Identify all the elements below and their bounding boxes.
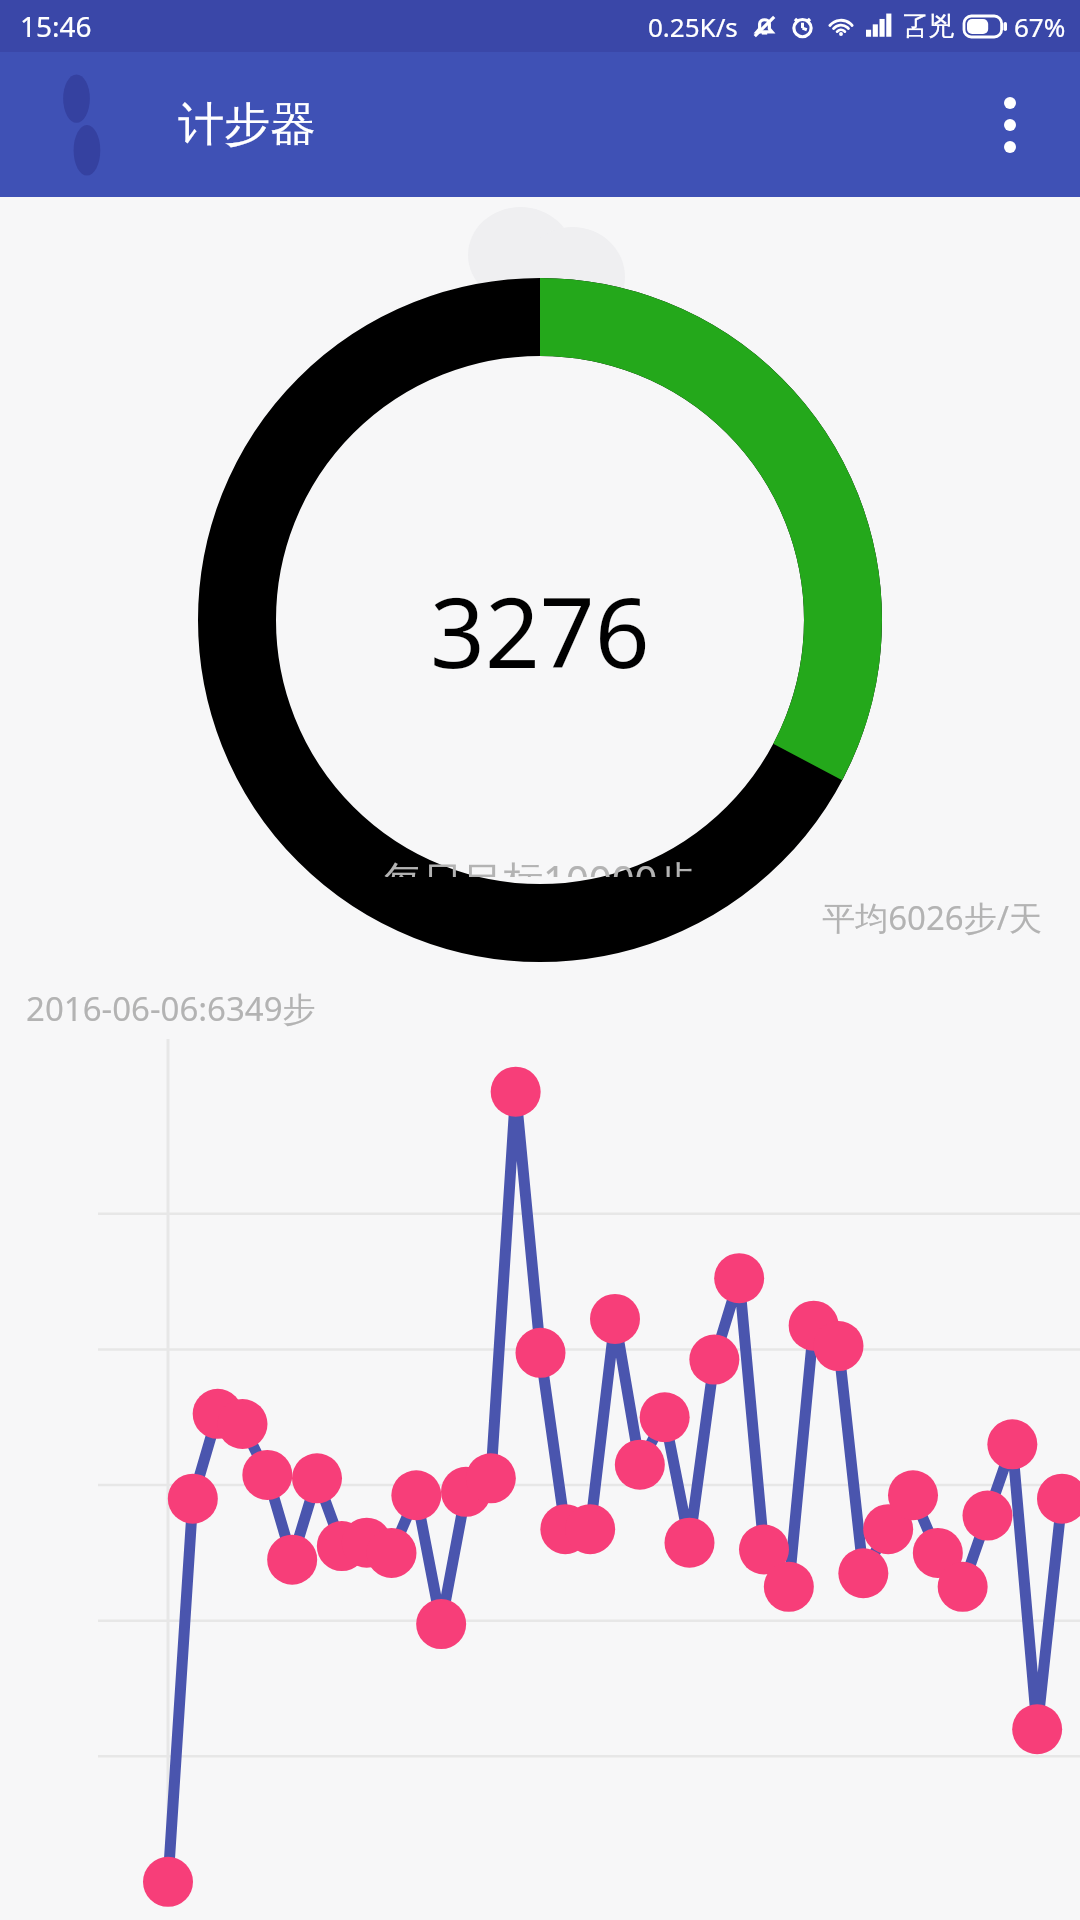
staticText: 0.25K/s xyxy=(648,9,738,44)
staticText: 叾兇 xyxy=(902,10,954,43)
staticText: 15:46 xyxy=(20,7,92,45)
staticText: 2016-06-06:6349步 xyxy=(26,986,316,1031)
staticText: 计步器 xyxy=(178,96,316,154)
staticText: 3276 xyxy=(430,565,650,696)
staticText: 每日目标10000步 xyxy=(383,852,698,877)
button[interactable]: More options xyxy=(962,77,1058,173)
staticText: 平均6026步/天 xyxy=(0,895,1042,940)
staticText: 67% xyxy=(1014,9,1066,44)
